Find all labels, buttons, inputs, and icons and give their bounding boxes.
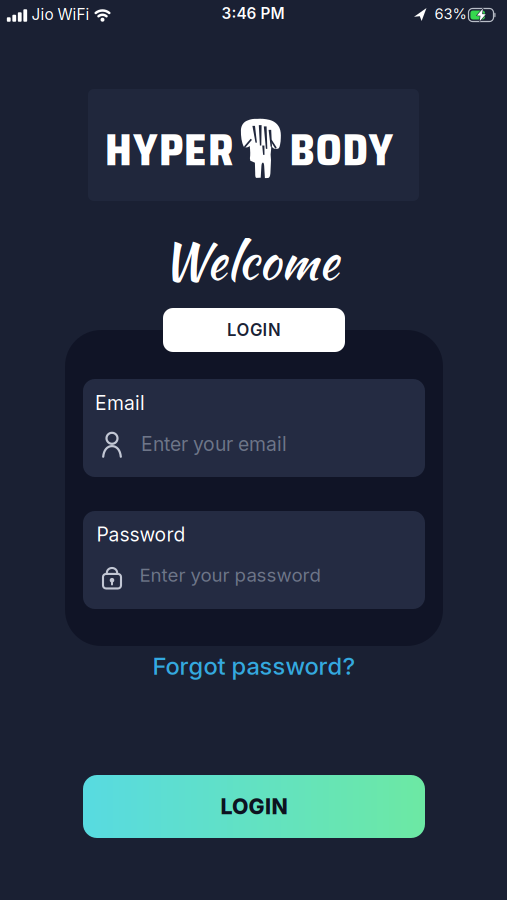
staticText: 63% [434, 5, 466, 23]
button[interactable]: LOGIN [83, 775, 425, 838]
staticText: Password [96, 523, 185, 546]
staticText: Jio WiFi [31, 5, 89, 24]
button[interactable]: LOGIN [163, 308, 345, 352]
button[interactable] [83, 379, 425, 477]
staticText: LOGIN [220, 794, 287, 819]
staticText: Forgot password? [152, 651, 355, 680]
staticText: Enter your password [139, 564, 320, 586]
staticText: Email [95, 391, 145, 415]
button[interactable]: Forgot password? [152, 651, 355, 680]
staticText: LOGIN [227, 320, 281, 340]
button[interactable] [83, 511, 425, 609]
staticText: BODY [289, 115, 393, 185]
staticText: 3:46 PM [221, 4, 284, 23]
staticText: Welcome [161, 225, 338, 297]
staticText: Enter your email [141, 432, 287, 456]
staticText: HYPER [105, 115, 234, 185]
